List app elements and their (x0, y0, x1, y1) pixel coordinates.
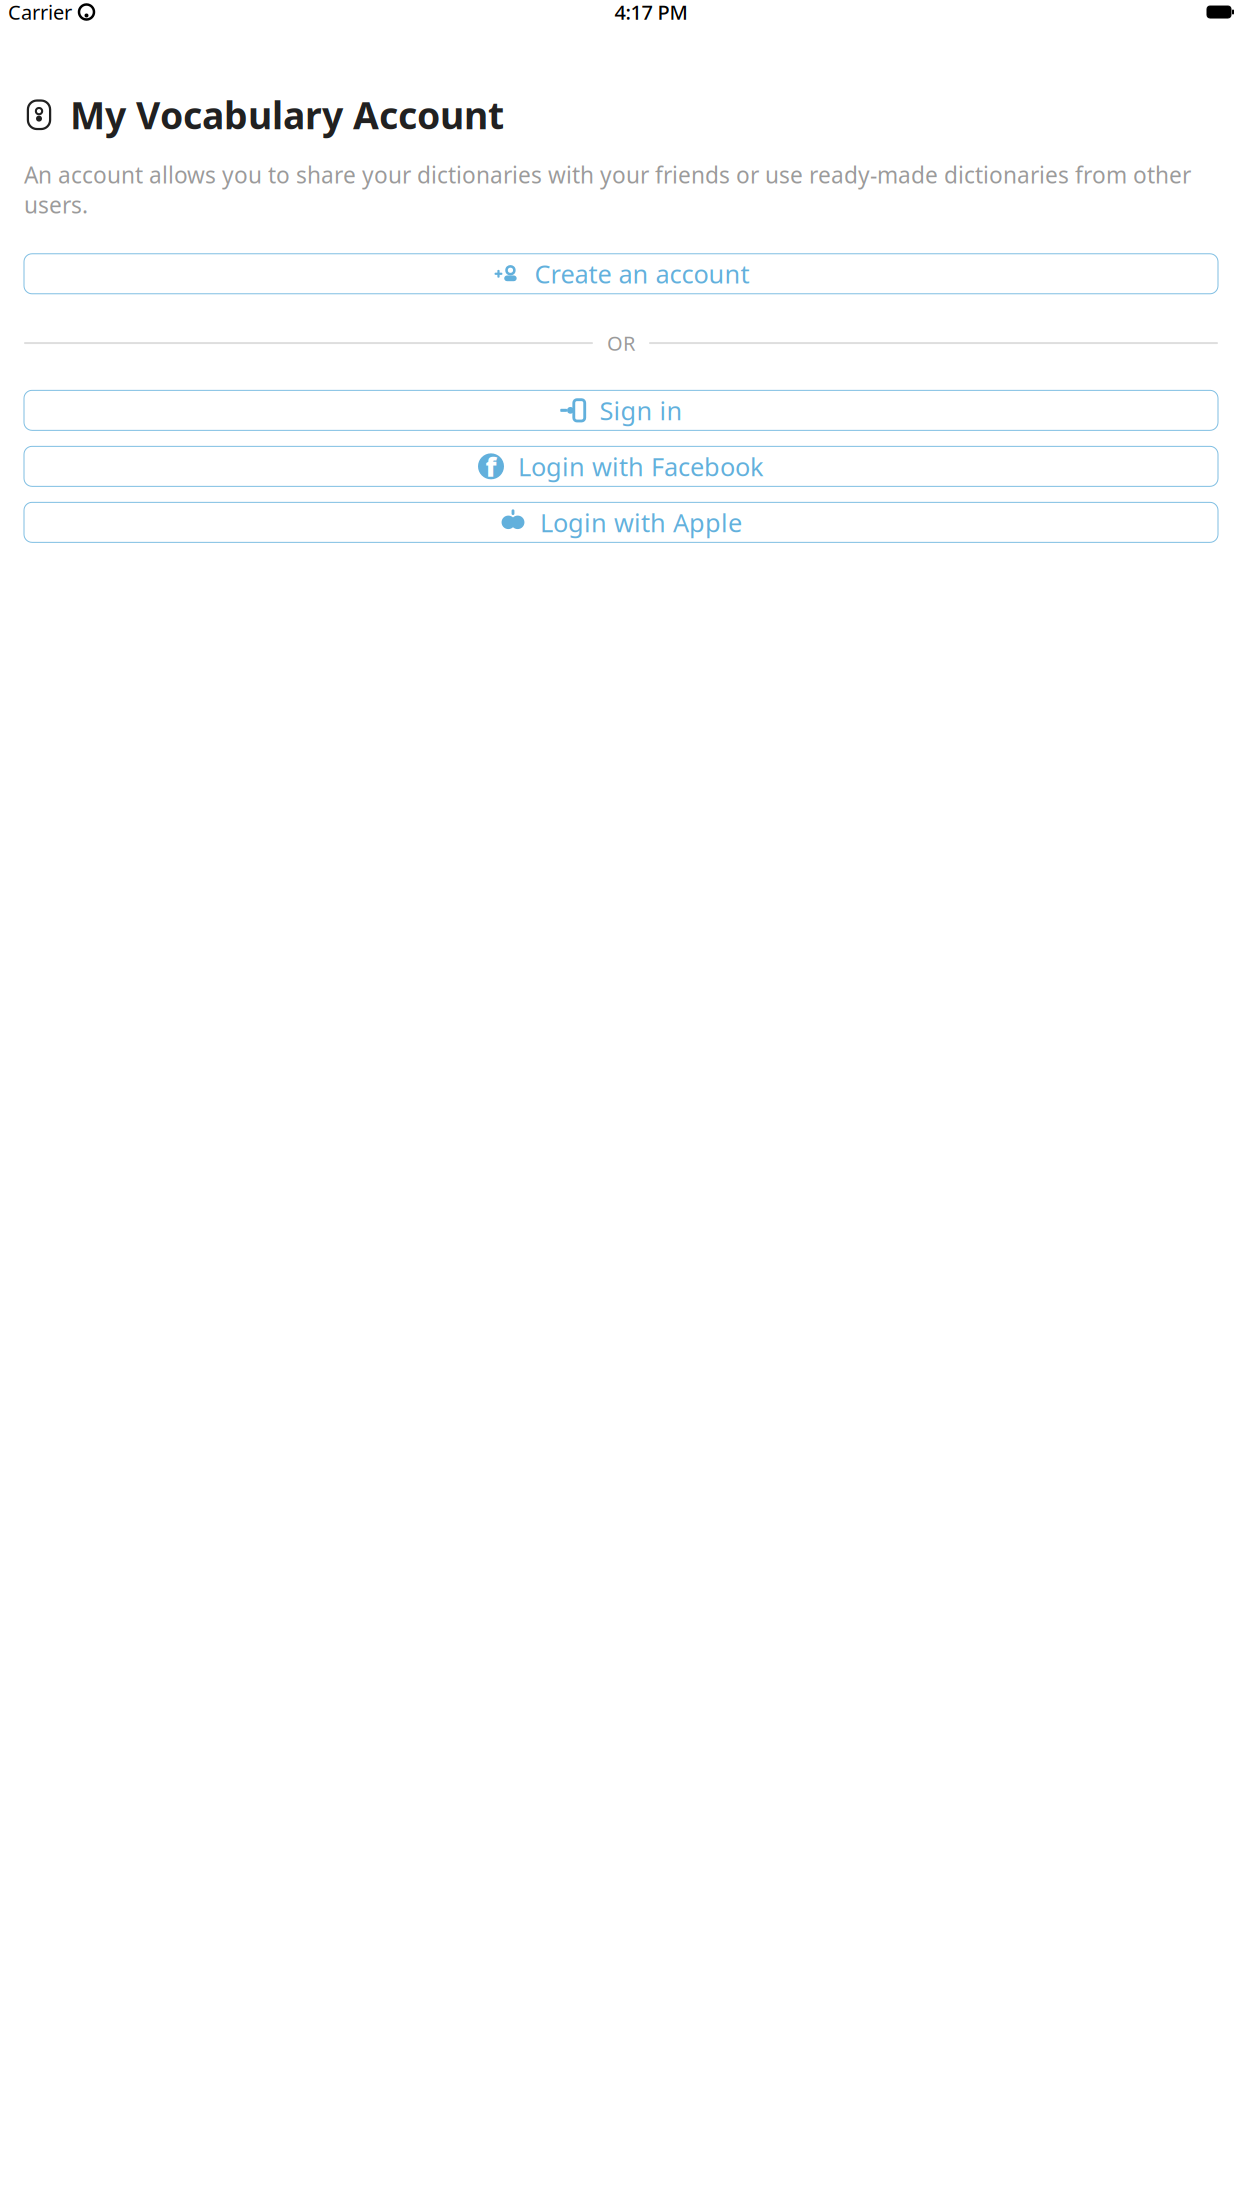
staticText: f (485, 449, 496, 484)
staticText: 4:17 PM (614, 0, 687, 25)
staticText: Carrier (8, 0, 72, 25)
staticText: Login with Apple (540, 505, 742, 539)
staticText: OR (607, 330, 635, 356)
staticText: An account allows you to share your dict… (24, 160, 1191, 220)
staticText: My Vocabulary Account (70, 90, 504, 140)
staticText: Login with Facebook (518, 449, 764, 483)
button[interactable]: f (24, 446, 1218, 486)
staticText: Create an account (534, 257, 749, 291)
button[interactable]: Create an account (24, 254, 1218, 294)
button[interactable]: Sign in (24, 390, 1218, 430)
staticText: Sign in (599, 393, 682, 427)
button[interactable]: Login with Apple (24, 502, 1218, 542)
